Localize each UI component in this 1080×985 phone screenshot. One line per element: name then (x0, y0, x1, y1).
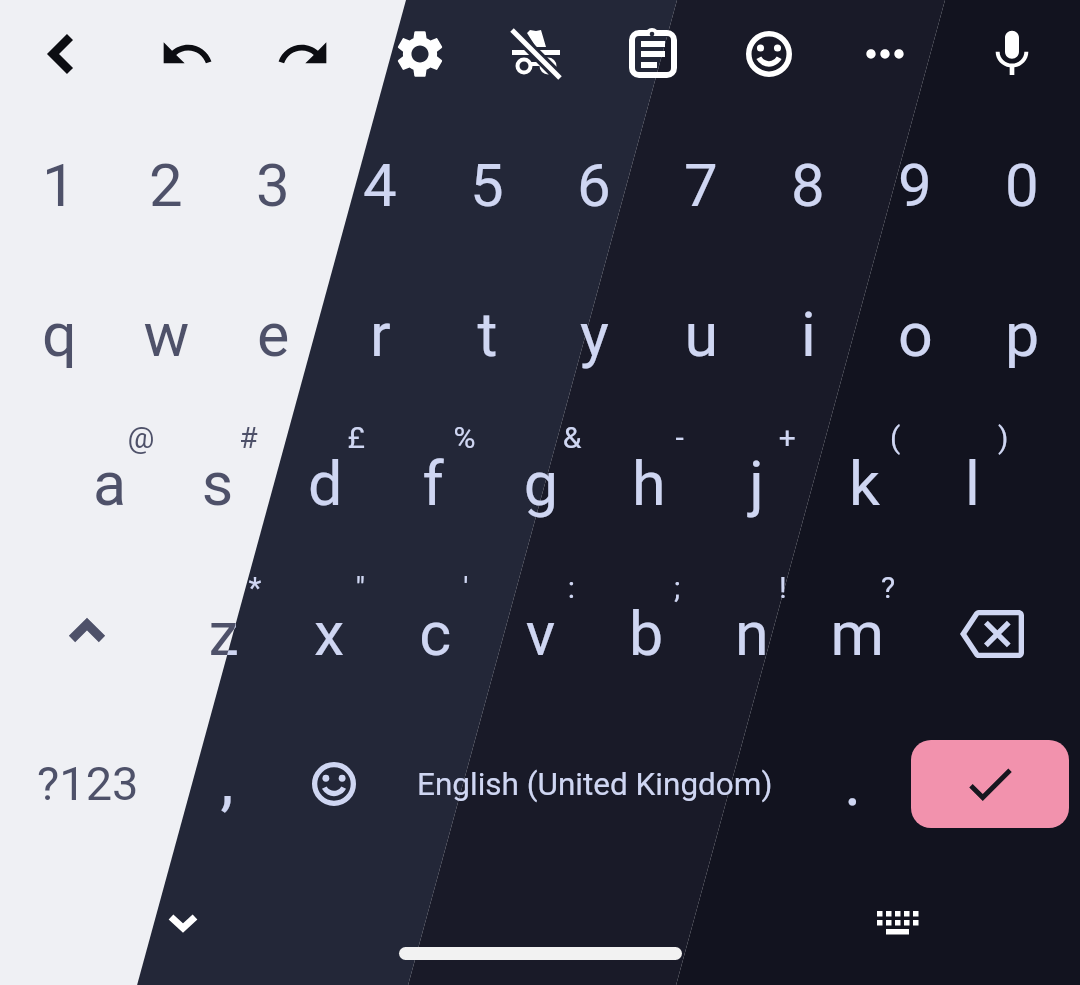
button[interactable]: 0 (968, 120, 1075, 260)
button[interactable]: z (171, 570, 276, 710)
button[interactable]: j (703, 420, 810, 560)
button[interactable]: g (487, 420, 594, 560)
button[interactable]: Backspace (940, 570, 1045, 710)
button[interactable]: k (811, 420, 918, 560)
button[interactable]: l (918, 420, 1025, 560)
button[interactable]: r (327, 272, 434, 412)
button[interactable]: 5 (433, 120, 540, 260)
button[interactable]: Hide keyboard (135, 874, 231, 970)
button[interactable]: Redo (255, 6, 351, 102)
button[interactable]: v (488, 570, 593, 710)
button[interactable]: h (595, 420, 702, 560)
button[interactable]: w (113, 272, 220, 412)
button[interactable]: n (699, 570, 804, 710)
button[interactable]: Switch keyboard (849, 874, 945, 970)
button[interactable]: Voice input (964, 6, 1060, 102)
button[interactable]: 4 (326, 120, 433, 260)
button[interactable]: s (164, 420, 271, 560)
button[interactable]: ?123 (18, 720, 158, 850)
button[interactable]: e (220, 272, 327, 412)
button[interactable]: , (178, 720, 278, 850)
button[interactable]: t (434, 272, 541, 412)
button[interactable]: m (805, 570, 910, 710)
button[interactable]: Emoji (284, 720, 384, 850)
button[interactable]: English (United Kingdom) (385, 720, 805, 850)
button[interactable]: u (648, 272, 755, 412)
button[interactable]: Clipboard (604, 6, 700, 102)
button[interactable]: f (379, 420, 486, 560)
button[interactable]: Settings (372, 6, 468, 102)
button[interactable]: y (541, 272, 648, 412)
button[interactable]: Back (14, 6, 110, 102)
button[interactable]: Undo (139, 6, 235, 102)
button[interactable]: 2 (112, 120, 219, 260)
button[interactable]: . (800, 720, 900, 850)
button[interactable]: q (6, 272, 113, 412)
button[interactable]: 8 (754, 120, 861, 260)
button[interactable]: 7 (647, 120, 754, 260)
button[interactable]: Emoji (721, 6, 817, 102)
button[interactable]: p (969, 272, 1076, 412)
button[interactable]: 6 (540, 120, 647, 260)
button[interactable]: x (277, 570, 382, 710)
button[interactable]: i (755, 272, 862, 412)
button[interactable]: Incognito mode off (487, 6, 583, 102)
button[interactable]: 3 (219, 120, 326, 260)
button[interactable]: d (272, 420, 379, 560)
button[interactable]: More options (837, 6, 933, 102)
button[interactable]: o (862, 272, 969, 412)
button[interactable]: c (382, 570, 487, 710)
button[interactable]: Enter (911, 740, 1069, 828)
button[interactable]: 9 (861, 120, 968, 260)
button[interactable]: a (56, 420, 163, 560)
button[interactable]: Shift (35, 570, 140, 710)
button[interactable]: 1 (5, 120, 112, 260)
button[interactable]: b (593, 570, 698, 710)
